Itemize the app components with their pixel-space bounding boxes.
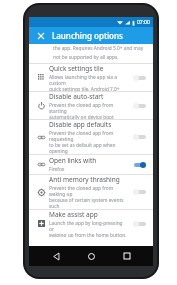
button[interactable]: Back	[47, 247, 65, 265]
staticText: the app. Requires Android 5.0+ and may	[53, 45, 144, 52]
staticText: not be supported by all apps.	[53, 54, 119, 61]
staticText: Prevent the cloned app from requesting t…	[49, 130, 128, 154]
staticText: Launching options	[52, 30, 123, 41]
button[interactable]: Disable auto-start	[29, 92, 153, 119]
button[interactable]: Make assist app	[29, 210, 153, 237]
button[interactable]: Disable app defaults	[29, 120, 153, 154]
staticText: Anti memory thrashing	[49, 175, 120, 184]
button[interactable]: Anti memory thrashing	[29, 175, 153, 209]
button[interactable]: Recents	[118, 247, 136, 265]
staticText: Launch the app by long-pressing or swipi…	[49, 220, 128, 237]
staticText: Firefox	[49, 166, 65, 173]
staticText: Prevent the cloned app from waking up be…	[49, 185, 128, 209]
staticText: 07:00	[137, 19, 150, 26]
staticText: Open links with	[49, 156, 97, 165]
button[interactable]: Close	[35, 30, 47, 42]
staticText: Disable auto-start	[49, 92, 104, 101]
button[interactable]: Home	[82, 247, 100, 265]
staticText: Quick settings tile	[49, 64, 104, 73]
button[interactable]: Quick settings tile	[29, 64, 153, 91]
staticText: Prevent the cloned app from starting aut…	[49, 102, 128, 119]
staticText: Disable app defaults	[49, 120, 112, 129]
staticText: Allows launching the app via a custom qu…	[49, 74, 128, 91]
button[interactable]: Open links with	[29, 155, 153, 174]
staticText: Make assist app	[49, 210, 98, 219]
